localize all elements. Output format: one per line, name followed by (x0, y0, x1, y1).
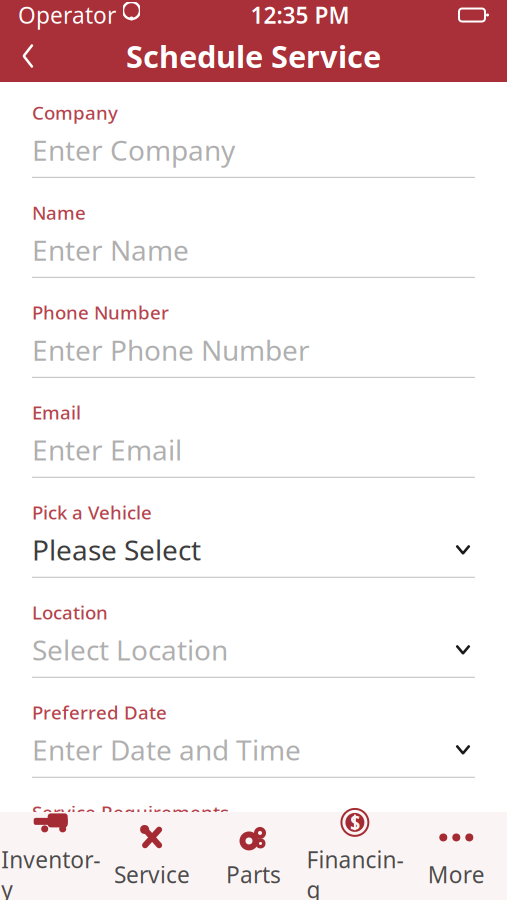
staticText: Please Select (32, 531, 201, 568)
button[interactable]: Service (101, 812, 203, 900)
button[interactable]: Phone Number (0, 300, 507, 400)
staticText: 12:35 PM (250, 0, 349, 30)
button[interactable]: Company (0, 100, 507, 200)
button[interactable]: Parts (203, 812, 304, 900)
staticText: More (428, 859, 485, 889)
button[interactable]: Service Requirements (0, 800, 507, 900)
staticText: Enter Phone Number (32, 331, 310, 368)
button[interactable]: Name (0, 200, 507, 300)
staticText: Operator (18, 0, 116, 30)
staticText: Name (32, 200, 86, 225)
button[interactable]: Email (0, 400, 507, 500)
staticText: Phone Number (32, 300, 169, 325)
staticText: Schedule Service (126, 36, 381, 76)
staticText: Company (32, 100, 118, 125)
staticText: Parts (226, 859, 281, 889)
button[interactable]: Inventory (0, 812, 101, 900)
staticText: Enter Name (32, 231, 189, 268)
staticText: Financing (306, 844, 403, 900)
staticText: S (350, 810, 360, 835)
button[interactable]: More (406, 812, 507, 900)
button[interactable]: Pick a Vehicle (0, 500, 507, 600)
button[interactable]: Preferred Date (0, 700, 507, 800)
staticText: Enter Date and Time (32, 731, 301, 768)
staticText: Select Service Requirements (32, 831, 399, 868)
staticText: Select Location (32, 631, 228, 668)
staticText: Email (32, 400, 81, 425)
button[interactable]: S (304, 812, 406, 900)
staticText: Service (114, 859, 190, 889)
staticText: Inventory (1, 844, 100, 900)
button[interactable]: Back (0, 30, 56, 82)
staticText: Service Requirements (32, 800, 229, 825)
staticText: Enter Company (32, 131, 235, 168)
staticText: Pick a Vehicle (32, 500, 152, 525)
staticText: Enter Email (32, 431, 182, 468)
staticText: Preferred Date (32, 700, 167, 725)
button[interactable]: Location (0, 600, 507, 700)
staticText: Location (32, 600, 108, 625)
